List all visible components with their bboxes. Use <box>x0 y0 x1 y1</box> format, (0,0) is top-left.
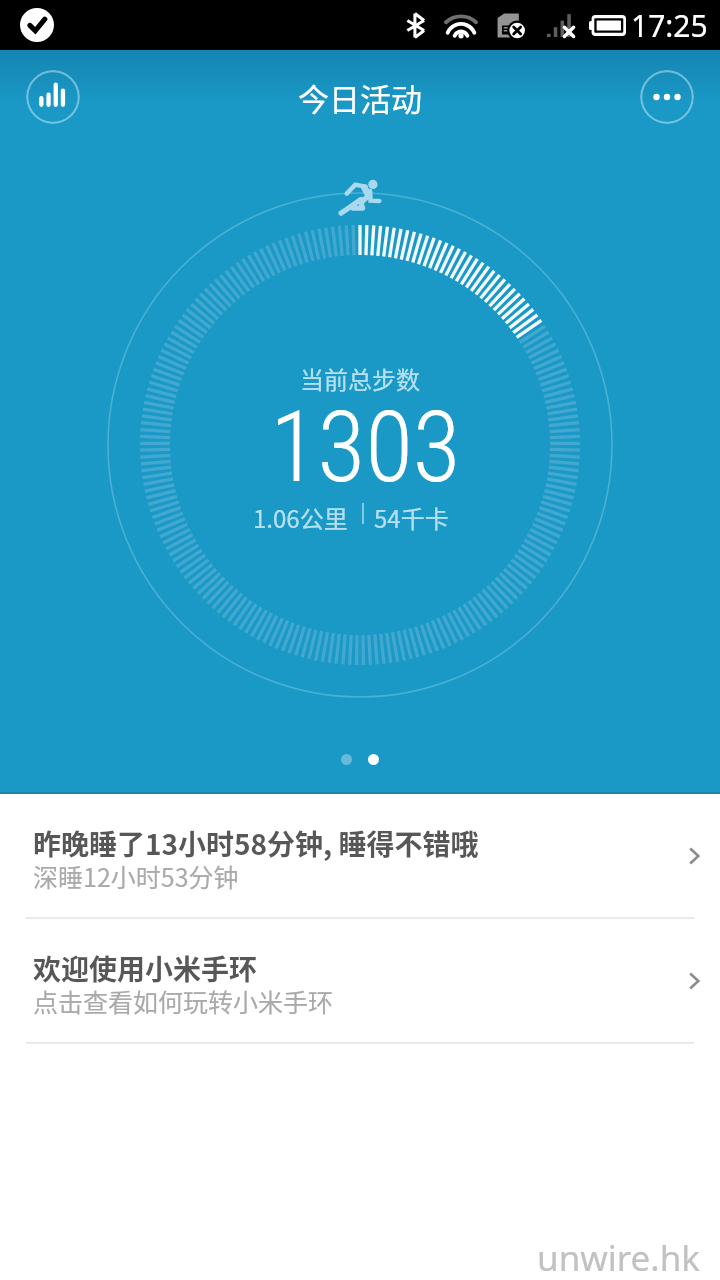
staticText: unwire.hk <box>537 1234 700 1280</box>
button[interactable]: Page 1 <box>341 754 352 765</box>
button[interactable]: Page 2 <box>368 754 379 765</box>
staticText: 当前总步数 <box>300 361 420 396</box>
button[interactable]: Statistics <box>26 70 80 124</box>
staticText: 1303 <box>270 390 461 505</box>
staticText: 深睡12小时53分钟 <box>33 858 239 894</box>
staticText: 今日活动 <box>298 75 422 120</box>
button[interactable]: More options <box>640 70 694 124</box>
staticText: 昨晚睡了13小时58分钟, 睡得不错哦 <box>33 823 479 864</box>
staticText: 1.06公里 <box>253 500 348 535</box>
staticText: 17:25 <box>631 5 708 46</box>
staticText: 点击查看如何玩转小米手环 <box>33 983 334 1019</box>
button[interactable]: 昨晚睡了13小时58分钟, 睡得不错哦 <box>0 794 720 917</box>
staticText: 54千卡 <box>374 500 449 535</box>
other: Notification <box>20 8 54 42</box>
staticText: 欢迎使用小米手环 <box>33 948 258 989</box>
button[interactable]: 欢迎使用小米手环 <box>0 919 720 1042</box>
